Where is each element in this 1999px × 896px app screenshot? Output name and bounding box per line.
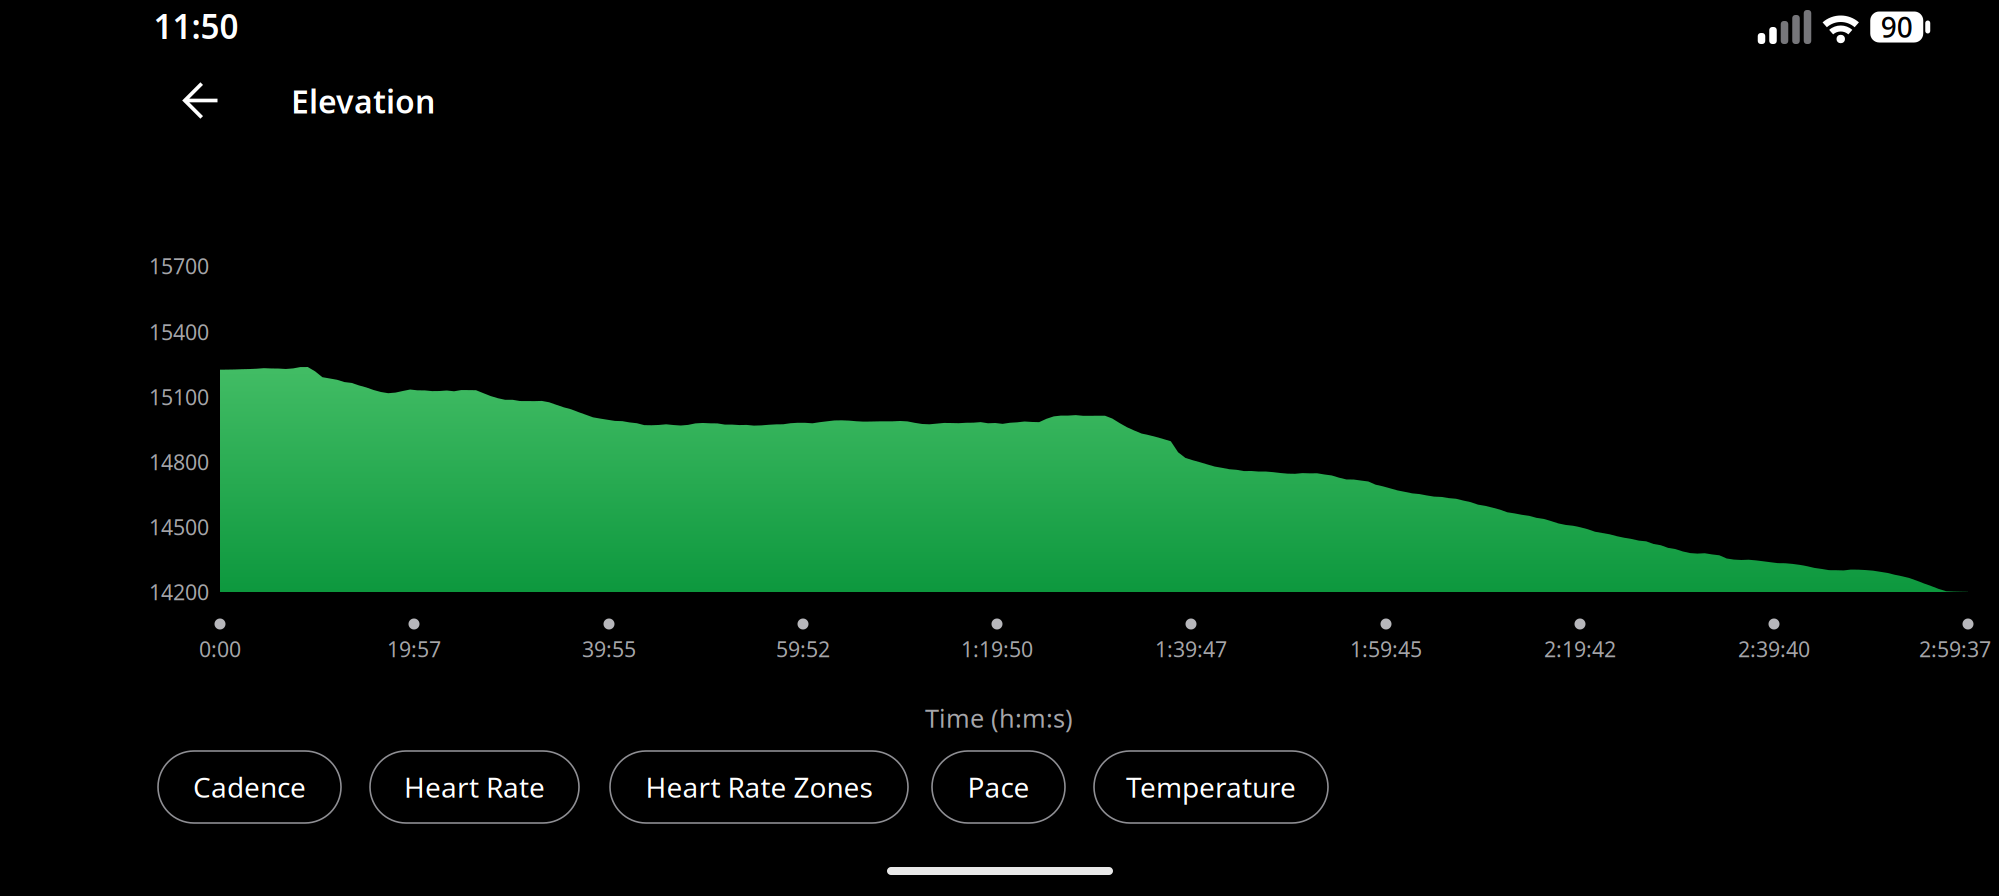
- staticText: 15700: [149, 252, 209, 280]
- staticText: Elevation: [291, 80, 435, 122]
- staticText: 15100: [149, 383, 209, 411]
- staticText: 14200: [149, 578, 209, 606]
- staticText: Temperature: [1126, 768, 1296, 806]
- staticText: Pace: [967, 768, 1029, 806]
- staticText: 1:19:50: [961, 635, 1033, 663]
- staticText: 15400: [149, 318, 209, 346]
- staticText: 0:00: [199, 635, 241, 663]
- button[interactable]: Heart Rate: [370, 751, 579, 823]
- staticText: 1:59:45: [1350, 635, 1422, 663]
- staticText: Time (h:m:s): [925, 701, 1073, 735]
- staticText: 14800: [149, 448, 209, 476]
- staticText: Cadence: [193, 768, 306, 806]
- staticText: 2:19:42: [1544, 635, 1616, 663]
- staticText: 1:39:47: [1155, 635, 1227, 663]
- staticText: 2:59:37: [1919, 635, 1991, 663]
- staticText: Heart Rate: [404, 768, 545, 806]
- staticText: 59:52: [776, 635, 830, 663]
- button[interactable]: Back: [153, 56, 249, 146]
- staticText: Heart Rate Zones: [645, 768, 872, 806]
- button[interactable]: Heart Rate Zones: [610, 751, 908, 823]
- staticText: 19:57: [387, 635, 441, 663]
- button[interactable]: Cadence: [158, 751, 341, 823]
- button[interactable]: Temperature: [1094, 751, 1328, 823]
- staticText: 90: [1881, 8, 1913, 46]
- button[interactable]: Pace: [932, 751, 1065, 823]
- staticText: 2:39:40: [1738, 635, 1810, 663]
- staticText: 14500: [149, 513, 209, 541]
- staticText: 39:55: [582, 635, 636, 663]
- staticText: 11:50: [153, 4, 238, 48]
